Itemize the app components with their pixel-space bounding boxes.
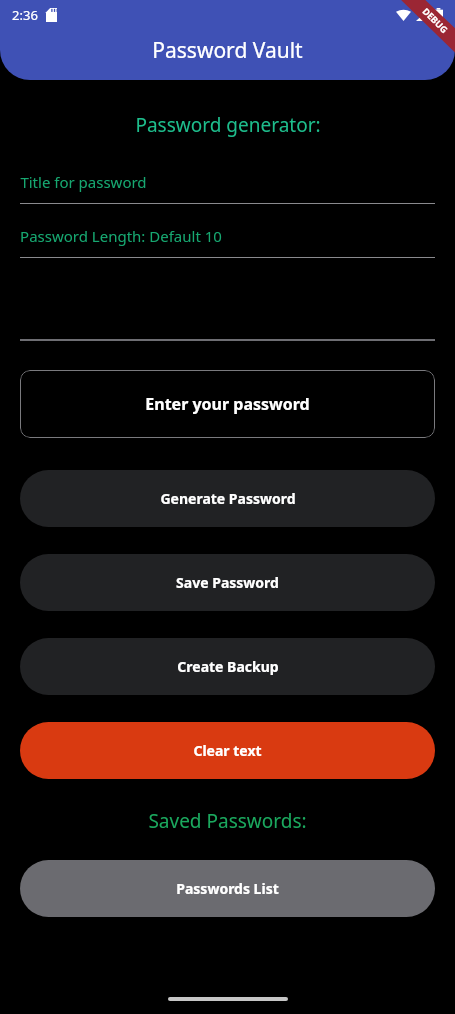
staticText: Clear text	[193, 741, 262, 760]
button[interactable]: Passwords List	[20, 860, 435, 917]
staticText: 2:36	[12, 6, 38, 24]
staticText: Password Vault	[152, 36, 303, 65]
button[interactable]: Generate Password	[20, 470, 435, 527]
staticText: Password Length: Default 10	[20, 226, 222, 246]
button[interactable]: Title for password	[20, 168, 435, 196]
other: Debug build banner	[397, 0, 455, 58]
staticText: DEBUG	[420, 5, 451, 35]
staticText: Passwords List	[176, 879, 279, 898]
button[interactable]: Clear text	[20, 722, 435, 779]
button[interactable]: Password Length: Default 10	[20, 222, 435, 250]
button[interactable]: Enter your password	[20, 370, 435, 438]
staticText: Saved Passwords:	[148, 808, 307, 834]
button[interactable]: Save Password	[20, 554, 435, 611]
staticText: Title for password	[20, 172, 147, 192]
button[interactable]: Create Backup	[20, 638, 435, 695]
staticText: Password generator:	[135, 112, 321, 138]
staticText: Generate Password	[160, 489, 296, 508]
staticText: Create Backup	[177, 657, 279, 676]
staticText: Enter your password	[145, 393, 310, 415]
staticText: Save Password	[176, 573, 279, 592]
